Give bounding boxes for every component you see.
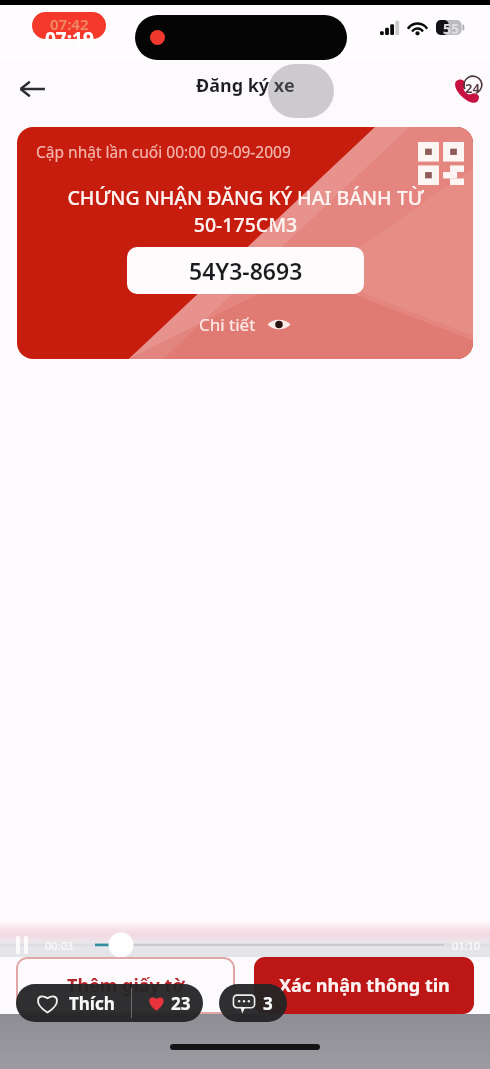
staticText: Xác nhận thông tin (279, 973, 450, 998)
button[interactable]: Thêm giấy tờ (16, 957, 235, 1014)
button[interactable]: Hotline 24/7 (446, 67, 490, 111)
staticText: 07:42 (50, 14, 89, 34)
button[interactable]: Thích (16, 984, 203, 1022)
staticText: 54Y3-8693 (189, 255, 303, 286)
staticText: Thêm giấy tờ (67, 973, 185, 998)
staticText: 23 (171, 992, 191, 1015)
button[interactable]: Chi tiết (196, 310, 294, 339)
staticText: 01:10 (452, 938, 481, 953)
staticText: 55 (443, 19, 460, 34)
button[interactable]: 3 (219, 984, 287, 1022)
button[interactable]: Xác nhận thông tin (254, 957, 474, 1014)
staticText: Thích (69, 992, 115, 1015)
button[interactable]: Back (10, 67, 54, 111)
button[interactable]: Cập nhật lần cuối 00:00 09-09-2009 (17, 127, 473, 359)
staticText: Đăng ký xe (196, 73, 295, 98)
staticText: Cập nhật lần cuối 00:00 09-09-2009 (36, 141, 291, 162)
staticText: 07:19 (45, 26, 94, 52)
staticText: 24 (465, 79, 480, 97)
staticText: 3 (263, 992, 273, 1015)
staticText: CHỨNG NHẬN ĐĂNG KÝ HAI BÁNH TỪ 50-175CM3 (67, 184, 424, 238)
staticText: Chi tiết (199, 313, 256, 336)
staticText: 00:03 (45, 938, 74, 953)
